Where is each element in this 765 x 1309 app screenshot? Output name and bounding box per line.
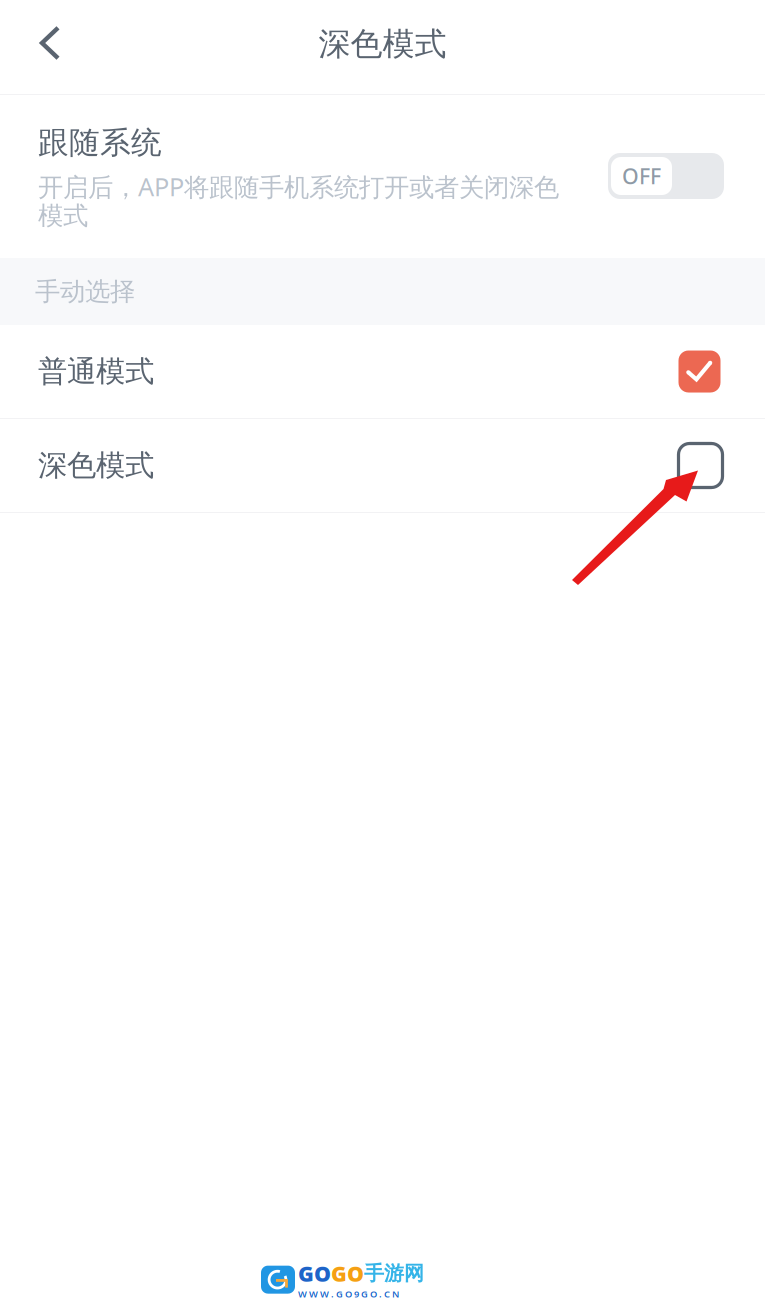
staticText: 手游网 <box>364 1261 424 1286</box>
staticText: 深色模式 <box>38 447 154 483</box>
staticText: GO <box>331 1259 364 1288</box>
button[interactable]: 深色模式 <box>0 419 765 512</box>
staticText: 跟随系统 <box>38 124 162 162</box>
staticText: 深色模式 <box>318 24 446 64</box>
button[interactable]: 普通模式 <box>0 325 765 418</box>
button[interactable]: Follow system, off <box>608 124 724 199</box>
button[interactable]: Back <box>0 0 96 94</box>
staticText: 普通模式 <box>38 353 154 389</box>
staticText: 开启后，APP将跟随手机系统打开或者关闭深色模式 <box>38 170 559 231</box>
staticText: 手动选择 <box>35 276 135 307</box>
staticText: W W W . G O 9 G O . C N <box>298 1288 399 1300</box>
staticText: OFF <box>622 162 661 190</box>
staticText: GO <box>298 1259 331 1288</box>
